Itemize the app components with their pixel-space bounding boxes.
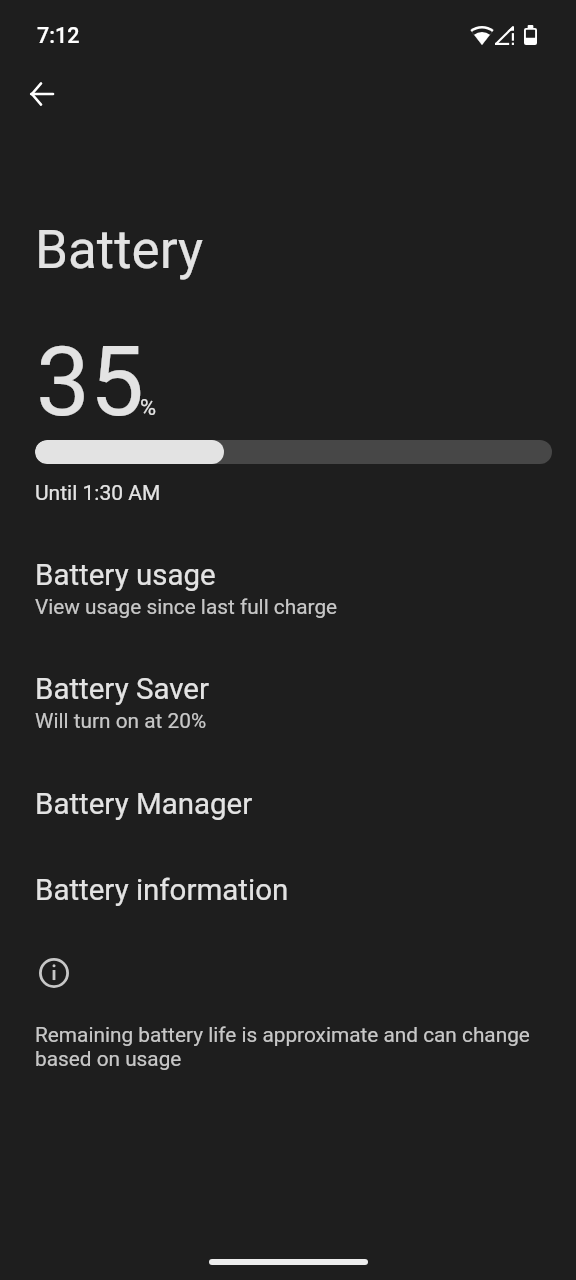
staticText: View usage since last full charge — [35, 595, 338, 619]
other: Information — [39, 958, 69, 988]
staticText: Battery information — [35, 873, 289, 908]
staticText: Battery Manager — [35, 787, 253, 822]
staticText: % — [140, 395, 157, 421]
staticText: 7:12 — [37, 23, 80, 48]
staticText: Battery — [35, 219, 204, 281]
button[interactable]: Battery information — [0, 846, 576, 932]
staticText: Battery usage — [35, 558, 216, 593]
button[interactable]: Battery Manager — [0, 766, 576, 846]
button[interactable]: Battery usage — [0, 538, 576, 652]
staticText: Remaining battery life is approximate an… — [35, 1023, 552, 1072]
button[interactable]: Back — [18, 70, 66, 118]
staticText: Until 1:30 AM — [35, 481, 161, 506]
staticText: Will turn on at 20% — [35, 709, 207, 733]
button[interactable]: Battery Saver — [0, 652, 576, 766]
staticText: Battery Saver — [35, 672, 209, 707]
staticText: 35 — [36, 326, 144, 439]
